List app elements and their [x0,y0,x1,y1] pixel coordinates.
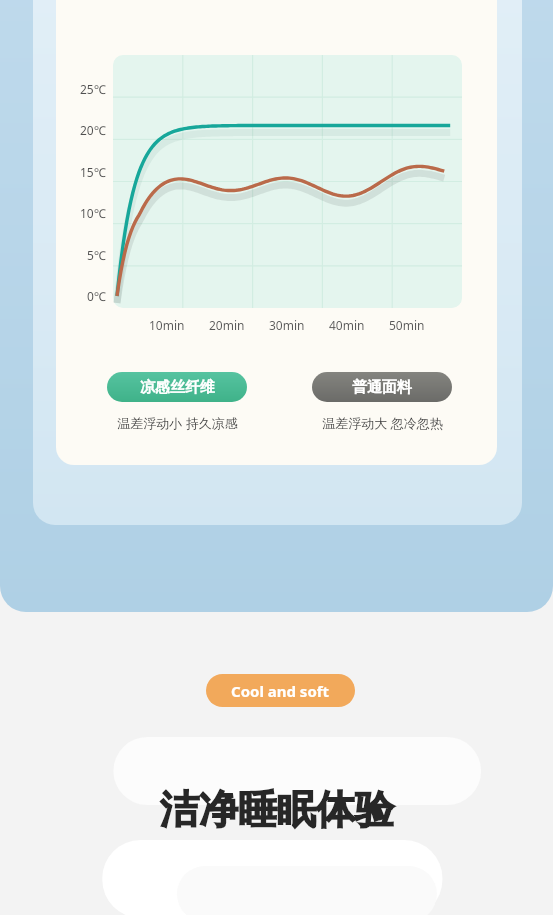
staticText: 50min [389,317,425,333]
button[interactable]: 凉感丝纤维 [107,372,247,402]
staticText: 普通面料 [352,378,412,397]
staticText: 洁净睡眠体验 [160,785,394,834]
staticText: 10℃ [80,205,106,221]
button[interactable]: 普通面料 [312,372,452,402]
button[interactable]: Cool and soft [206,674,355,707]
staticText: 30min [269,317,305,333]
staticText: 40min [329,317,365,333]
staticText: 15℃ [80,164,106,180]
staticText: 20min [209,317,245,333]
staticText: 温差浮动小 持久凉感 [117,414,238,432]
staticText: 0℃ [87,288,106,304]
staticText: 10min [149,317,185,333]
staticText: 20℃ [80,122,106,138]
staticText: 5℃ [87,247,106,263]
staticText: 温差浮动大 忽冷忽热 [322,414,443,432]
staticText: Cool and soft [231,681,330,701]
staticText: 25℃ [80,81,106,97]
staticText: 凉感丝纤维 [140,378,215,397]
